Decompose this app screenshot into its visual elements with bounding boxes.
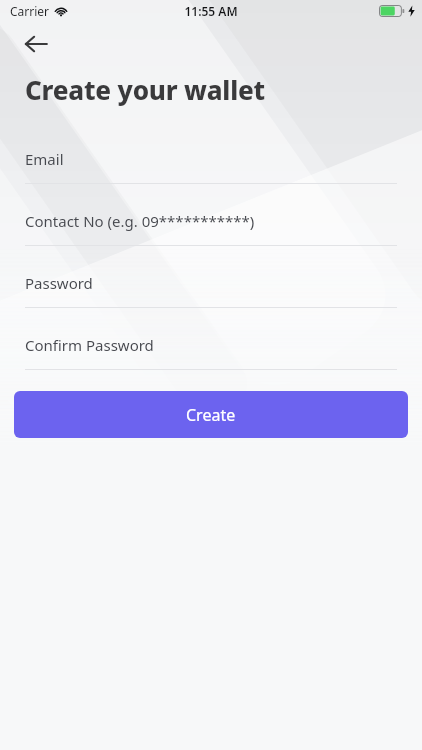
- staticText: 11:55 AM: [184, 3, 238, 19]
- button[interactable]: Create: [14, 391, 408, 438]
- staticText: Confirm Password: [25, 335, 154, 355]
- staticText: Contact No (e.g. 09***********): [25, 211, 255, 231]
- button[interactable]: Back: [14, 22, 58, 66]
- staticText: Carrier: [10, 3, 50, 19]
- staticText: Email: [25, 149, 64, 169]
- staticText: Create your wallet: [25, 72, 265, 107]
- staticText: Create: [186, 404, 236, 426]
- staticText: Password: [25, 273, 93, 293]
